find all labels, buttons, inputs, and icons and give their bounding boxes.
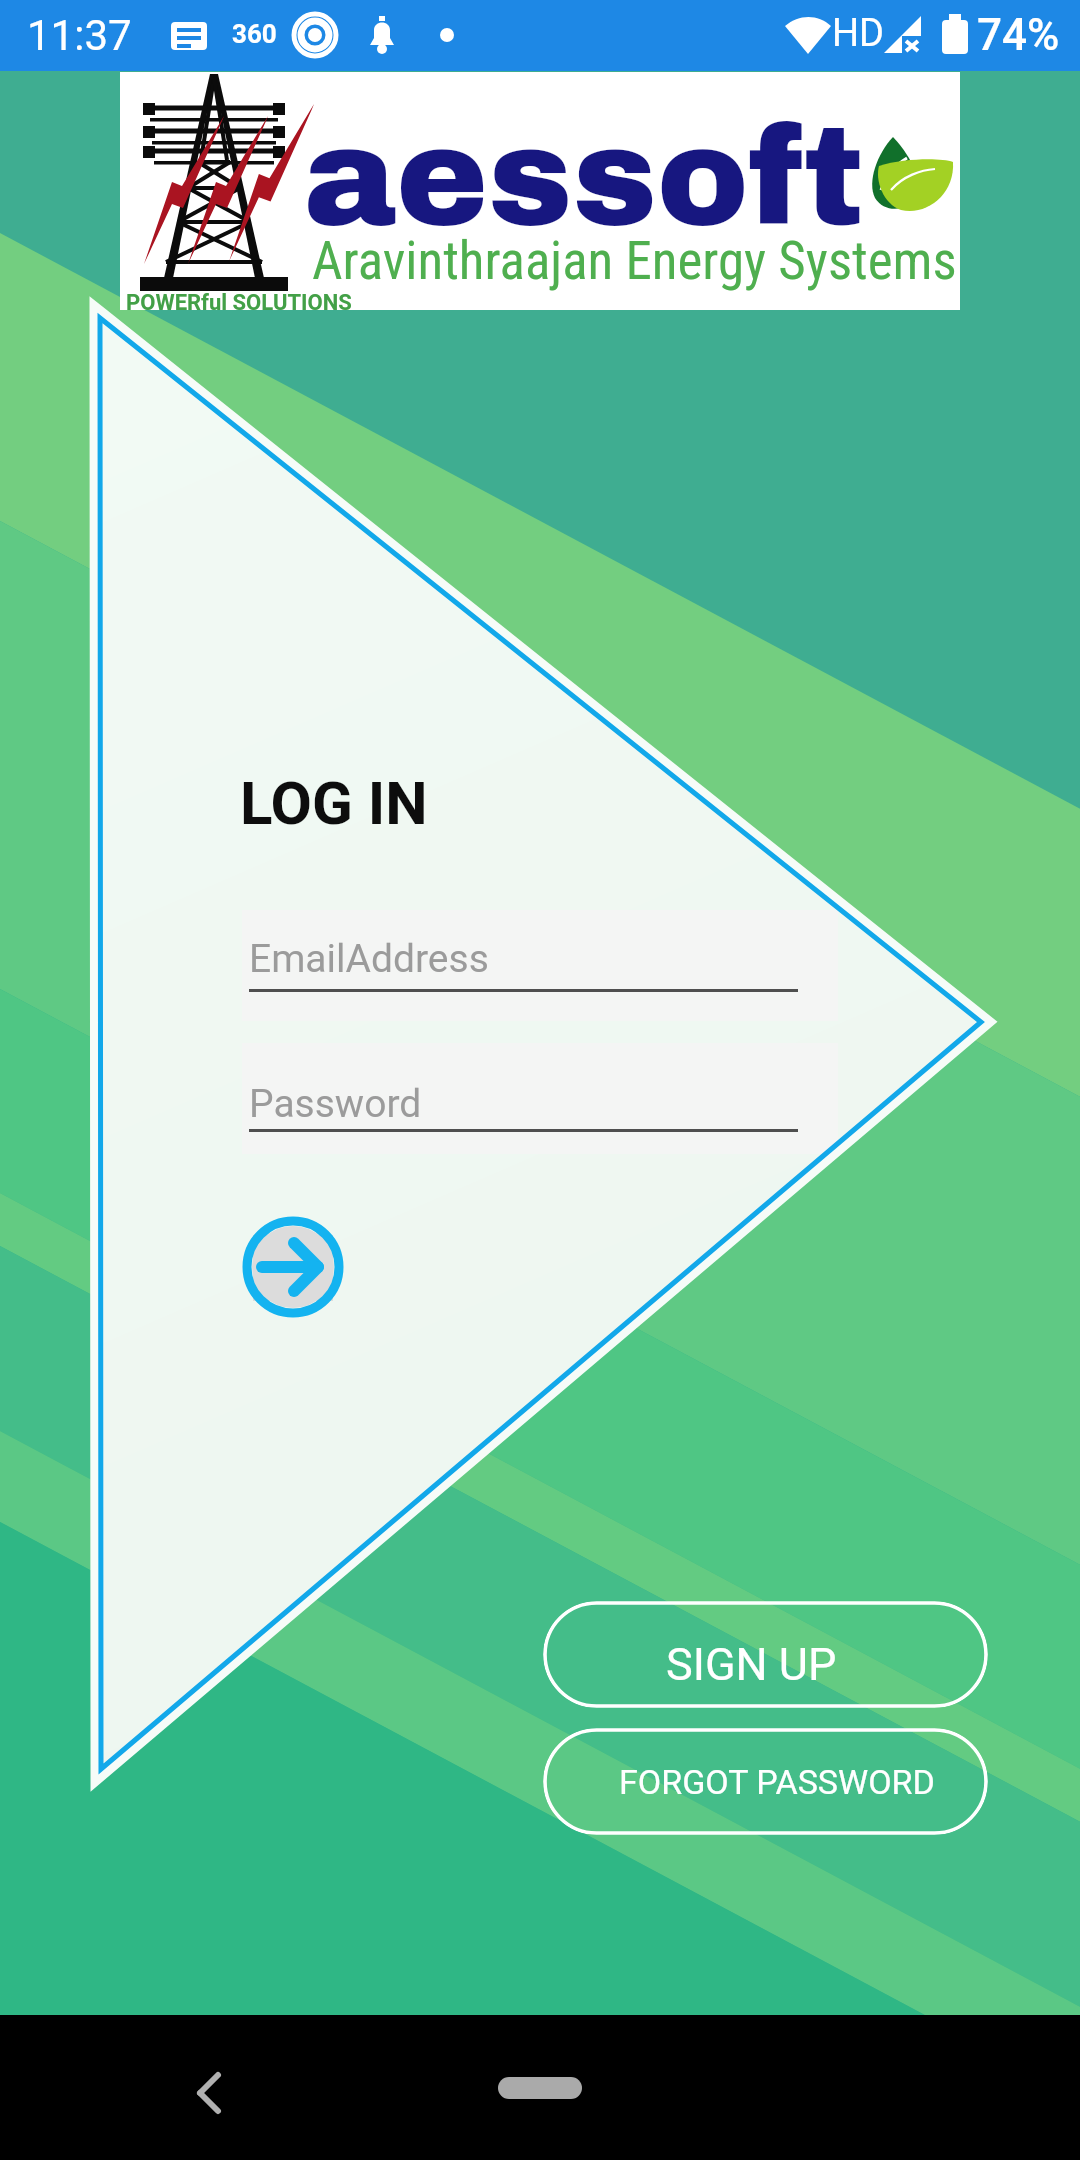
staticText: LOG IN — [240, 768, 428, 838]
staticText: SIGN UP — [666, 1638, 837, 1691]
staticText: aessoft — [304, 103, 864, 253]
staticText: FORGOT PASSWORD — [619, 1762, 935, 1802]
staticText: Password — [249, 1081, 422, 1127]
staticText: 360 — [232, 19, 277, 49]
button[interactable]: Home — [498, 2077, 582, 2099]
staticText: EmailAddress — [249, 936, 489, 982]
button[interactable]: Back — [158, 2033, 258, 2133]
button[interactable]: Password — [249, 1081, 798, 1132]
button[interactable]: FORGOT PASSWORD — [543, 1728, 988, 1835]
staticText: HD — [832, 11, 885, 56]
staticText: 11:37 — [27, 11, 132, 60]
staticText: Aravinthraajan Energy Systems — [312, 230, 957, 292]
staticText: POWERful SOLUTIONS — [126, 290, 352, 316]
button[interactable]: EmailAddress — [249, 936, 798, 992]
button[interactable]: Log in — [237, 1211, 349, 1323]
button[interactable]: SIGN UP — [543, 1601, 988, 1708]
staticText: 74% — [977, 9, 1060, 61]
